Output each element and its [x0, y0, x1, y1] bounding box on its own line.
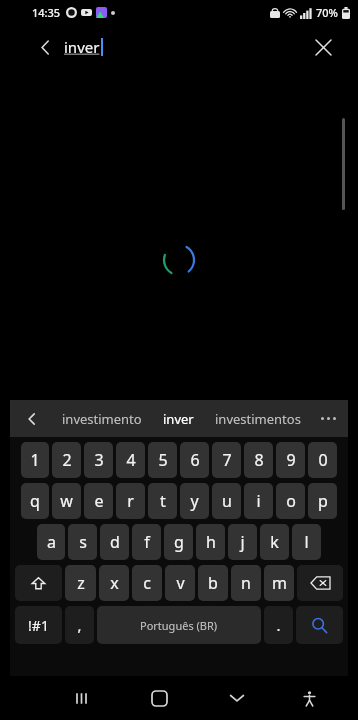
button[interactable]: q	[21, 483, 49, 519]
staticText: a	[47, 531, 56, 553]
button[interactable]: a	[37, 524, 65, 560]
staticText: o	[286, 490, 296, 512]
staticText: 14:35	[32, 5, 61, 20]
button[interactable]: Accessibility	[276, 676, 342, 720]
staticText: 4	[126, 449, 136, 471]
staticText: y	[190, 490, 199, 512]
button[interactable]: Clear search	[306, 30, 340, 64]
button[interactable]: 0	[308, 442, 337, 478]
staticText: p	[318, 490, 328, 512]
staticText: l	[304, 531, 309, 553]
button[interactable]: s	[68, 524, 97, 560]
button[interactable]: Home	[120, 676, 198, 720]
button[interactable]: .	[264, 606, 293, 644]
button[interactable]: m	[264, 565, 294, 601]
button[interactable]: 3	[84, 442, 113, 478]
staticText: 0	[318, 449, 328, 471]
staticText: 9	[286, 449, 296, 471]
button[interactable]: o	[276, 483, 305, 519]
button[interactable]: Shift	[15, 565, 62, 601]
button[interactable]: h	[196, 524, 225, 560]
staticText: 8	[254, 449, 264, 471]
staticText: d	[110, 531, 120, 553]
button[interactable]: 8	[244, 442, 273, 478]
button[interactable]: r	[116, 483, 145, 519]
staticText: j	[240, 531, 245, 553]
button[interactable]: 7	[212, 442, 241, 478]
staticText: w	[60, 490, 73, 512]
button[interactable]: Back	[28, 30, 62, 64]
staticText: investimento	[62, 410, 142, 428]
button[interactable]: 5	[148, 442, 177, 478]
button[interactable]: investimento	[54, 400, 149, 437]
button[interactable]: w	[52, 483, 81, 519]
staticText: t	[160, 490, 166, 512]
button[interactable]: g	[164, 524, 193, 560]
button[interactable]: t	[148, 483, 177, 519]
staticText: v	[176, 572, 185, 594]
button[interactable]: inver	[149, 400, 208, 437]
staticText: 2	[62, 449, 72, 471]
staticText: 3	[94, 449, 104, 471]
button[interactable]: d	[100, 524, 129, 560]
staticText: ,	[77, 615, 82, 635]
button[interactable]: j	[228, 524, 257, 560]
staticText: h	[206, 531, 216, 553]
button[interactable]: ,	[65, 606, 94, 644]
button[interactable]: l	[292, 524, 321, 560]
button[interactable]: u	[212, 483, 241, 519]
staticText: inver	[163, 410, 194, 428]
staticText: x	[110, 572, 119, 594]
button[interactable]: z	[65, 565, 96, 601]
staticText: 5	[158, 449, 168, 471]
staticText: f	[144, 531, 150, 553]
button[interactable]: More suggestions	[308, 400, 348, 437]
staticText: n	[241, 572, 251, 594]
button[interactable]: 1	[21, 442, 49, 478]
button[interactable]: x	[99, 565, 129, 601]
button[interactable]: 2	[52, 442, 81, 478]
button[interactable]: Backspace	[297, 565, 343, 601]
button[interactable]: y	[180, 483, 209, 519]
staticText: m	[272, 572, 287, 594]
staticText: u	[222, 490, 232, 512]
button[interactable]: Hide keyboard	[198, 676, 276, 720]
button[interactable]: f	[132, 524, 161, 560]
staticText: 70%	[316, 5, 338, 20]
staticText: investimentos	[215, 410, 301, 428]
staticText: 6	[190, 449, 200, 471]
button[interactable]: investimentos	[208, 400, 308, 437]
button[interactable]: k	[260, 524, 289, 560]
button[interactable]: v	[165, 565, 195, 601]
staticText: .	[276, 615, 281, 635]
staticText: q	[30, 490, 40, 512]
button[interactable]: 9	[276, 442, 305, 478]
button[interactable]: e	[84, 483, 113, 519]
button[interactable]: b	[198, 565, 228, 601]
staticText: s	[79, 531, 87, 553]
button[interactable]: Recent apps	[42, 676, 120, 720]
staticText: r	[127, 490, 134, 512]
staticText: i	[256, 490, 261, 512]
staticText: c	[143, 572, 151, 594]
staticText: g	[174, 531, 184, 553]
button[interactable]: c	[132, 565, 162, 601]
staticText: b	[208, 572, 218, 594]
staticText: e	[94, 490, 104, 512]
staticText: !#1	[28, 616, 49, 635]
button[interactable]: p	[308, 483, 337, 519]
staticText: 1	[30, 449, 40, 471]
button[interactable]: i	[244, 483, 273, 519]
button[interactable]: n	[231, 565, 261, 601]
staticText: z	[77, 572, 85, 594]
staticText: Português (BR)	[140, 618, 218, 633]
staticText: inver	[64, 37, 100, 57]
button[interactable]: Português (BR)	[97, 606, 261, 644]
staticText: k	[270, 531, 279, 553]
button[interactable]: Search	[296, 606, 343, 644]
button[interactable]: 4	[116, 442, 145, 478]
button[interactable]: 6	[180, 442, 209, 478]
button[interactable]: !#1	[15, 606, 62, 644]
button[interactable]: Previous suggestions	[10, 400, 54, 437]
staticText: 7	[222, 449, 232, 471]
